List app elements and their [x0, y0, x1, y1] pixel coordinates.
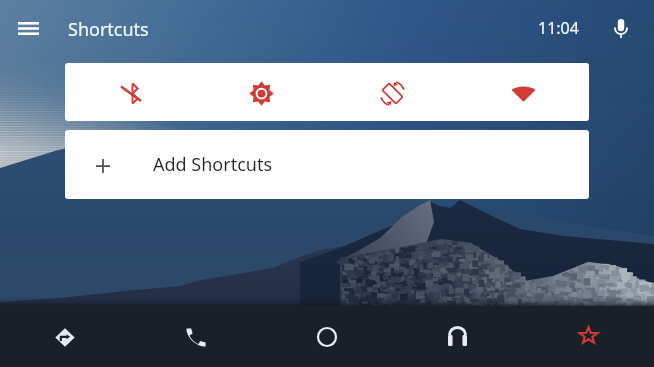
- button[interactable]: Phone: [130, 306, 261, 367]
- button[interactable]: Navigation: [0, 306, 130, 367]
- staticText: 11:04: [538, 17, 579, 39]
- button[interactable]: Favourites: [523, 306, 654, 367]
- staticText: Shortcuts: [68, 17, 149, 42]
- button[interactable]: Add Shortcuts: [65, 130, 589, 199]
- button[interactable]: Voice search: [603, 10, 639, 46]
- button[interactable]: Brightness: [196, 63, 327, 121]
- button[interactable]: Home: [261, 306, 392, 367]
- button[interactable]: Menu: [5, 5, 52, 52]
- button[interactable]: Auto rotate: [327, 63, 458, 121]
- staticText: Add Shortcuts: [153, 152, 273, 177]
- button[interactable]: Bluetooth off: [65, 63, 196, 121]
- button[interactable]: Wi-Fi: [458, 63, 589, 121]
- button[interactable]: Media: [392, 306, 523, 367]
